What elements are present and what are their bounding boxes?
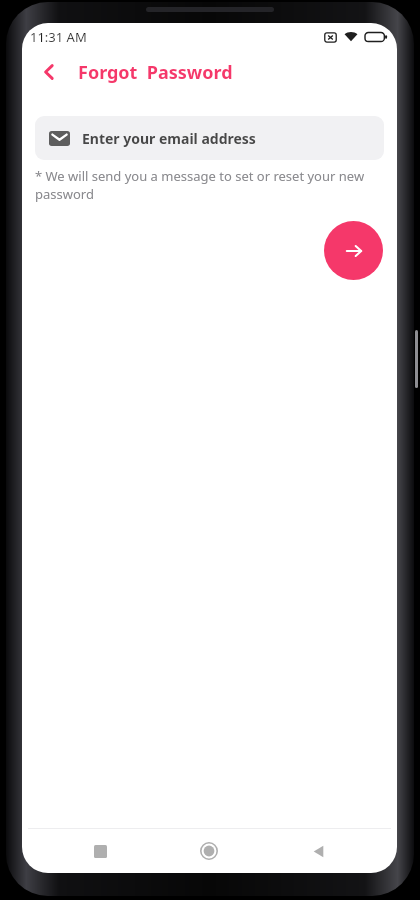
button[interactable]: Submit: [324, 221, 383, 280]
button[interactable]: Home: [187, 829, 231, 873]
button[interactable]: Back: [32, 55, 66, 89]
button[interactable]: Recents: [78, 829, 122, 873]
staticText: Forgot Password: [78, 60, 233, 85]
staticText: Enter your email address: [82, 129, 256, 148]
staticText: * We will send you a message to set or r…: [35, 167, 383, 203]
button[interactable]: Enter your email address: [35, 116, 384, 160]
staticText: 11:31 AM: [30, 28, 87, 46]
button[interactable]: Back: [296, 829, 340, 873]
